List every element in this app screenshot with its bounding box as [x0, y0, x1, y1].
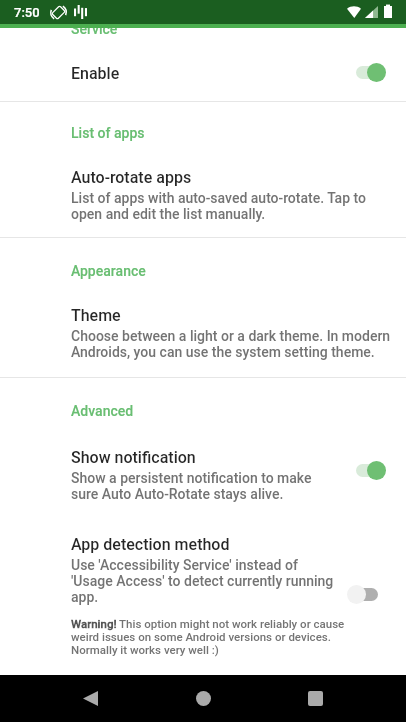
- staticText: Service: [71, 21, 118, 37]
- button[interactable]: Enable: [0, 37, 406, 101]
- staticText: Enable: [71, 64, 347, 83]
- button[interactable]: Theme: [0, 279, 406, 377]
- staticText: 7:50: [14, 5, 40, 20]
- staticText: Appearance: [71, 263, 146, 279]
- staticText: Show notification: [71, 448, 196, 467]
- staticText: List of apps with auto-saved auto-rotate…: [71, 190, 390, 222]
- staticText: App detection method: [71, 535, 230, 554]
- button[interactable]: Show notification: [0, 419, 406, 502]
- staticText: Warning! This option might not work reli…: [71, 617, 345, 656]
- button[interactable]: Recents: [291, 675, 339, 722]
- button[interactable]: Auto-rotate apps: [0, 141, 406, 237]
- button[interactable]: Home: [179, 675, 227, 722]
- staticText: Auto-rotate apps: [71, 168, 192, 187]
- button[interactable]: Back: [66, 675, 114, 722]
- staticText: Choose between a light or a dark theme. …: [71, 328, 394, 360]
- staticText: Theme: [71, 306, 121, 325]
- staticText: Advanced: [71, 403, 134, 419]
- button[interactable]: App detection method: [0, 502, 406, 656]
- staticText: List of apps: [71, 125, 145, 141]
- staticText: Show a persistent notification to make s…: [71, 470, 336, 502]
- staticText: Use 'Accessibility Service' instead of '…: [71, 557, 336, 605]
